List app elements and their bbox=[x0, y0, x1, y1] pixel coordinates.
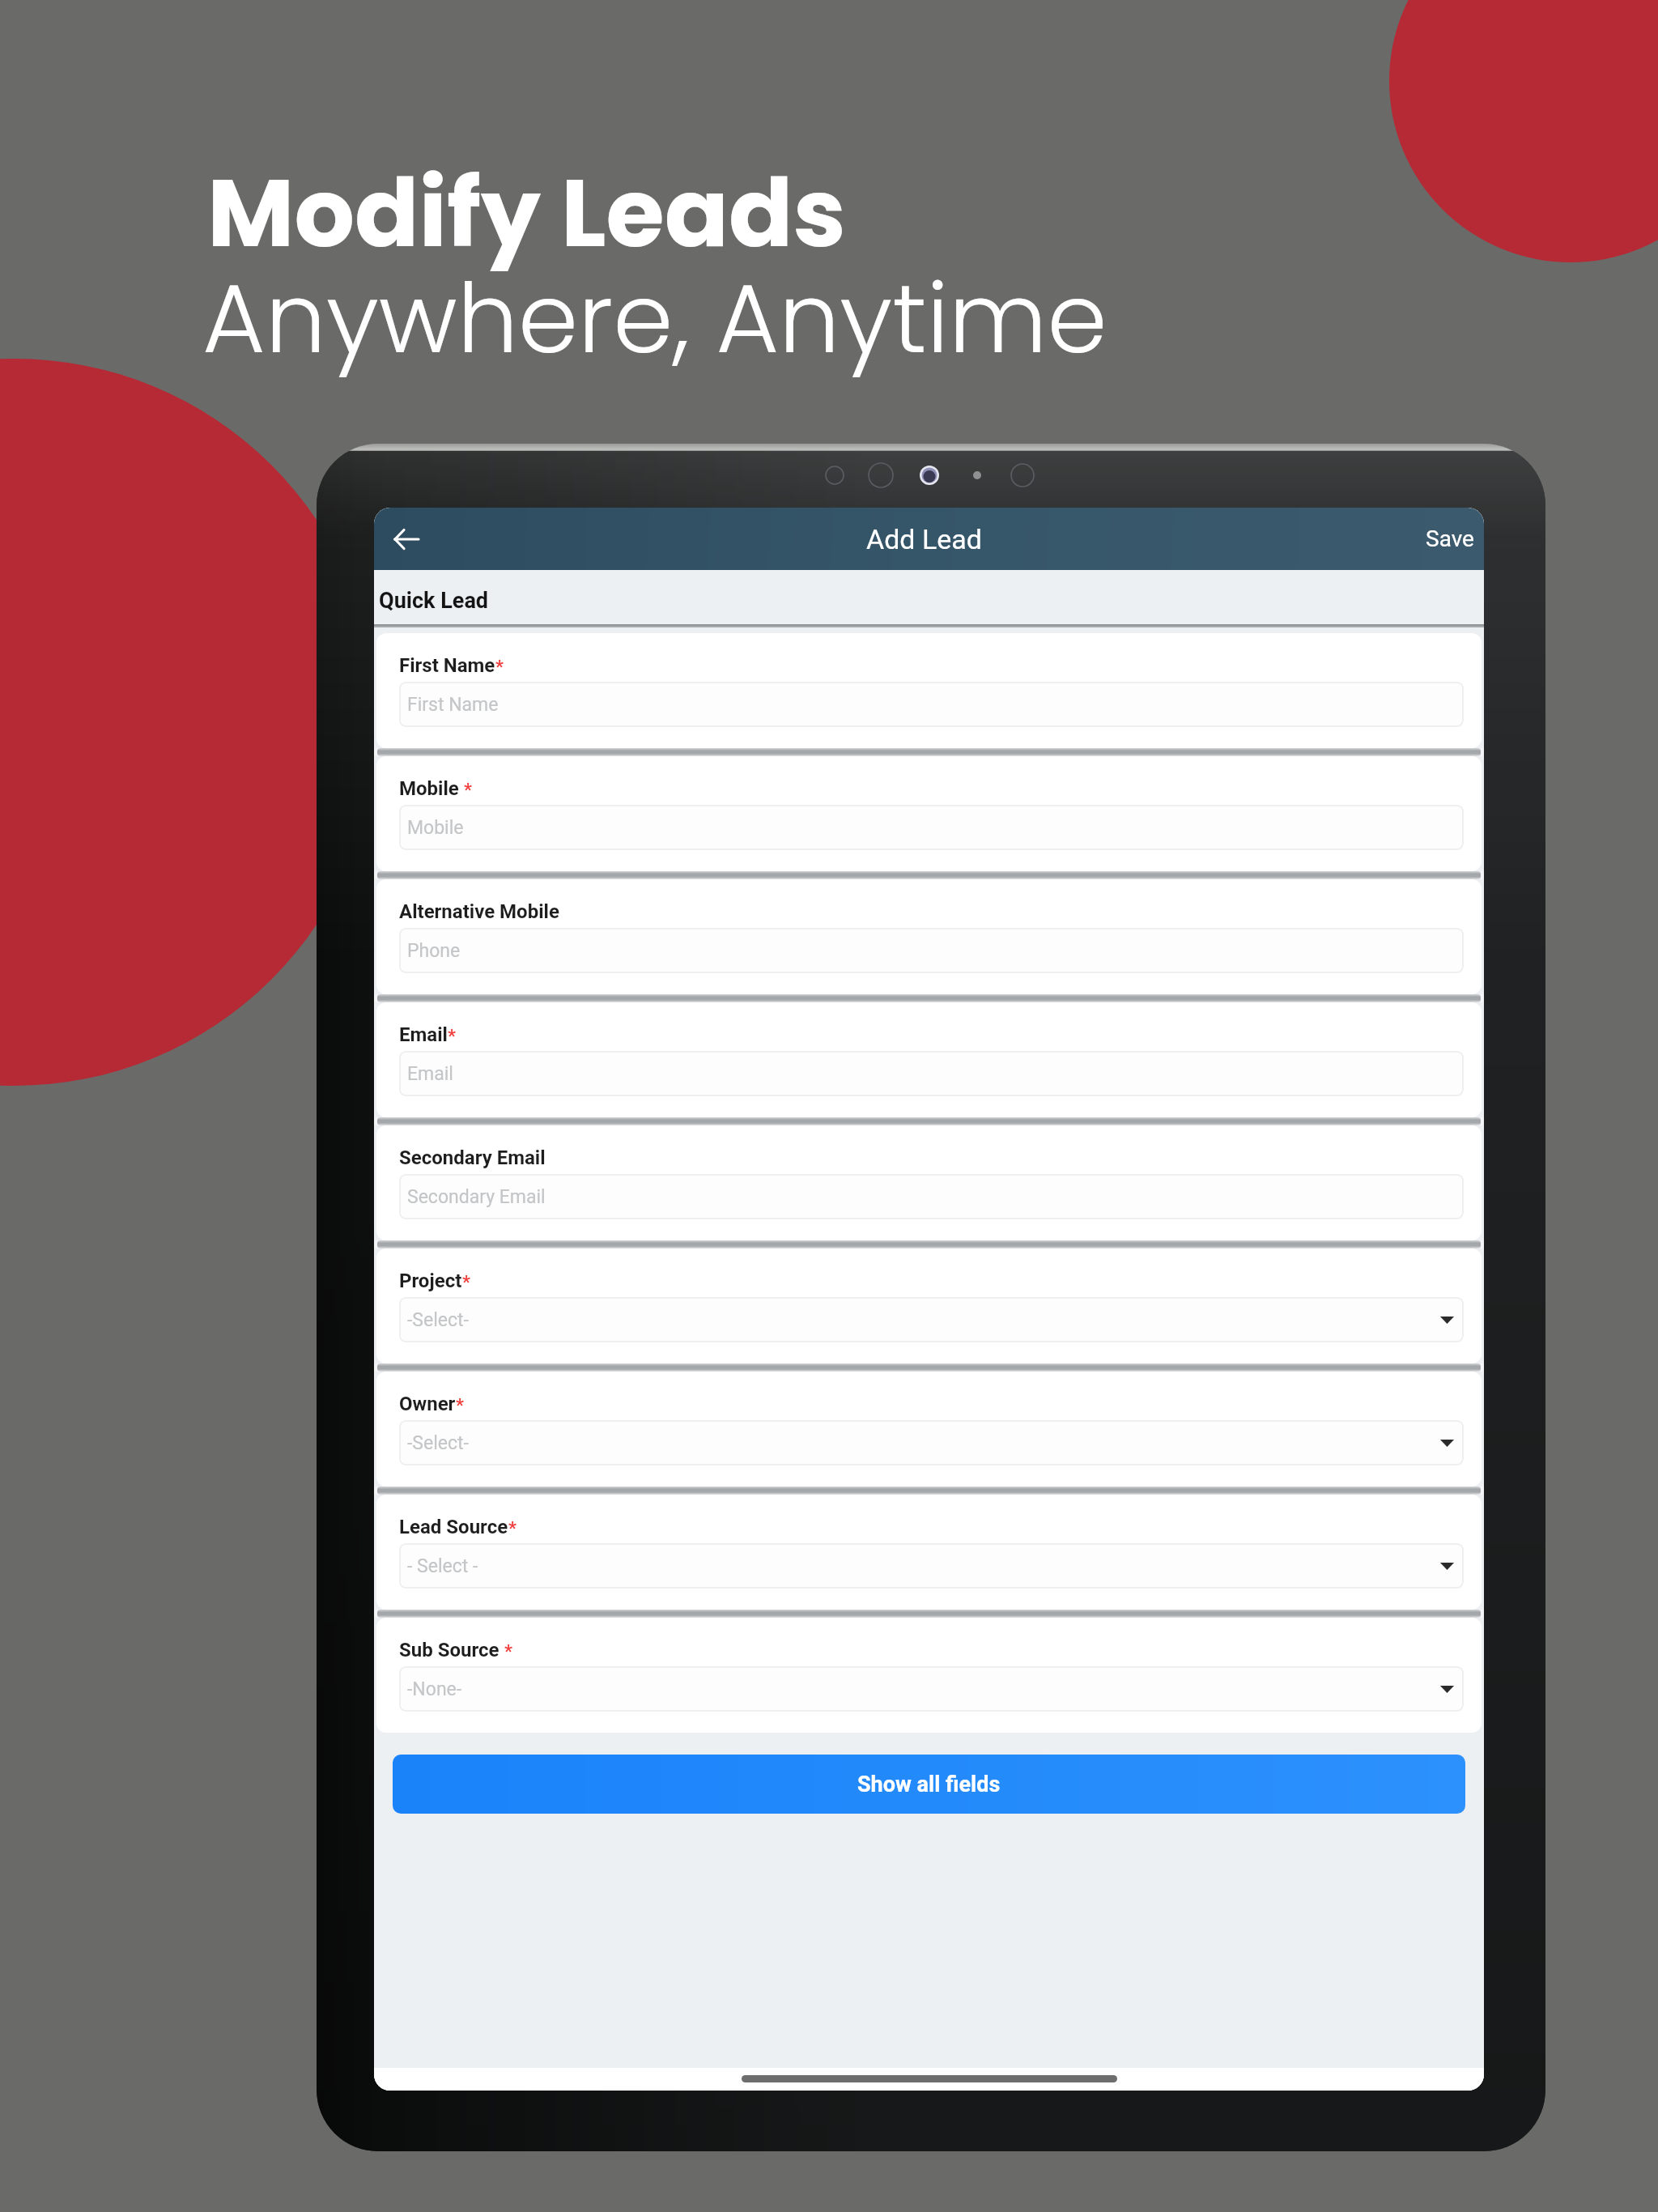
button[interactable]: Mobile bbox=[376, 756, 1482, 871]
staticText: -Select- bbox=[407, 1309, 469, 1331]
button[interactable]: Email bbox=[376, 1002, 1482, 1117]
button[interactable]: Lead Source bbox=[376, 1495, 1482, 1610]
staticText: Save bbox=[1426, 525, 1474, 552]
staticText: * bbox=[504, 1641, 512, 1662]
staticText: Anywhere, Anytime bbox=[202, 251, 1107, 386]
staticText: Sub Source bbox=[399, 1639, 504, 1661]
staticText: Project bbox=[399, 1270, 462, 1292]
staticText: Add Lead bbox=[866, 523, 982, 555]
staticText: First Name bbox=[399, 654, 495, 677]
staticText: Mobile bbox=[407, 817, 464, 839]
button[interactable]: First Name bbox=[376, 633, 1482, 748]
staticText: * bbox=[456, 1395, 464, 1416]
button[interactable]: Project bbox=[376, 1249, 1482, 1363]
staticText: Email bbox=[399, 1023, 448, 1046]
staticText: Quick Lead bbox=[379, 588, 489, 614]
staticText: Email bbox=[407, 1063, 453, 1085]
button[interactable]: Back bbox=[374, 508, 437, 570]
button[interactable]: Owner bbox=[376, 1372, 1482, 1487]
button[interactable]: Alternative Mobile bbox=[376, 879, 1482, 994]
button[interactable]: Sub Source bbox=[376, 1618, 1482, 1733]
staticText: * bbox=[508, 1518, 517, 1539]
staticText: Show all fields bbox=[857, 1772, 1001, 1797]
staticText: Alternative Mobile bbox=[399, 900, 559, 923]
staticText: Lead Source bbox=[399, 1516, 508, 1538]
staticText: -Select- bbox=[407, 1432, 469, 1454]
staticText: Secondary Email bbox=[399, 1146, 546, 1169]
staticText: - Select - bbox=[407, 1555, 478, 1577]
staticText: * bbox=[448, 1026, 456, 1047]
button[interactable]: Show all fields bbox=[393, 1755, 1465, 1814]
staticText: -None- bbox=[407, 1678, 462, 1700]
staticText: Modify Leads bbox=[207, 147, 846, 279]
staticText: Phone bbox=[407, 940, 461, 962]
staticText: Owner bbox=[399, 1393, 456, 1415]
button[interactable]: Save bbox=[1405, 508, 1484, 570]
button[interactable]: Secondary Email bbox=[376, 1125, 1482, 1240]
staticText: Secondary Email bbox=[407, 1186, 546, 1208]
staticText: * bbox=[464, 780, 472, 801]
staticText: First Name bbox=[407, 694, 499, 716]
staticText: Mobile bbox=[399, 777, 464, 800]
staticText: * bbox=[462, 1272, 470, 1293]
staticText: * bbox=[495, 657, 504, 678]
